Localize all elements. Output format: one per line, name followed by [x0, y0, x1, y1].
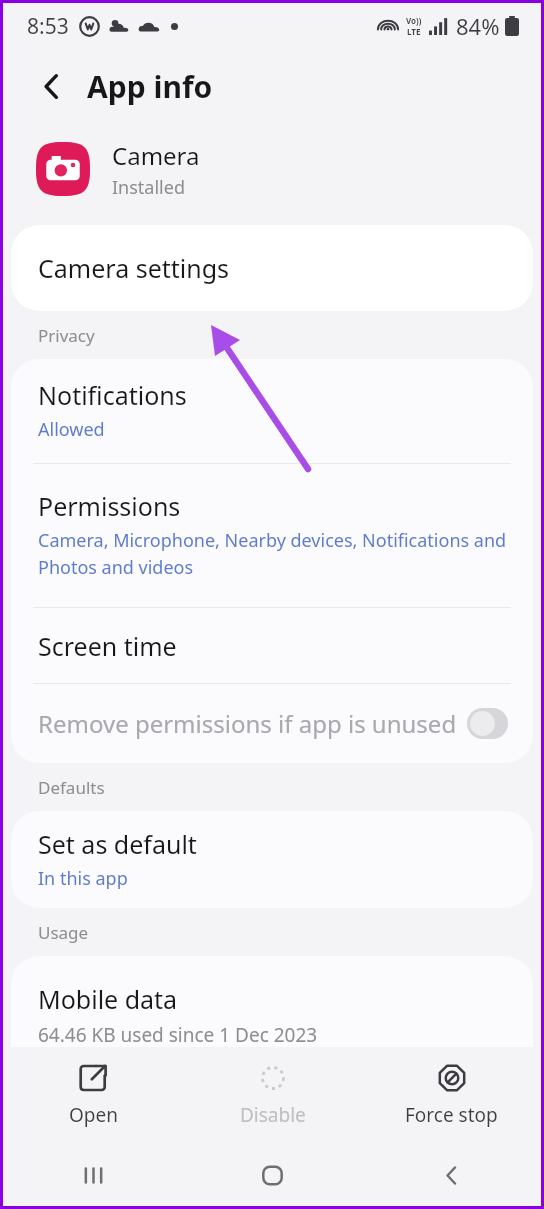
button[interactable]: Mobile data: [11, 956, 533, 1074]
button[interactable]: Disable: [183, 1047, 362, 1144]
button[interactable]: Back: [362, 1144, 541, 1206]
staticText: Camera settings: [38, 251, 230, 285]
staticText: Camera, Microphone, Nearby devices, Noti…: [38, 528, 507, 553]
staticText: Usage: [38, 921, 89, 944]
button[interactable]: Permissions: [11, 464, 533, 607]
button[interactable]: Set as default: [11, 811, 533, 908]
button[interactable]: Screen time: [11, 608, 533, 683]
staticText: Privacy: [38, 324, 95, 347]
staticText: Vo)): [406, 15, 422, 26]
staticText: App info: [87, 66, 213, 107]
staticText: Defaults: [38, 776, 105, 799]
staticText: Remove permissions if app is unused: [38, 707, 457, 740]
staticText: Camera: [112, 139, 200, 172]
button[interactable]: Notifications: [11, 359, 533, 463]
button[interactable]: Force stop: [362, 1047, 541, 1144]
button[interactable]: Remove permissions if app is unused: [11, 684, 533, 763]
staticText: Screen time: [38, 629, 177, 663]
staticText: Set as default: [38, 827, 197, 861]
button[interactable]: Recent apps: [3, 1144, 183, 1206]
staticText: Mobile data: [38, 982, 178, 1016]
staticText: 64.46 KB used since 1 Dec 2023: [38, 1022, 318, 1048]
button[interactable]: Back: [27, 62, 75, 110]
staticText: 84%: [456, 11, 500, 41]
staticText: Force stop: [405, 1102, 498, 1128]
button[interactable]: Home: [183, 1144, 362, 1206]
staticText: Notifications: [38, 378, 187, 412]
staticText: Photos and videos: [38, 555, 194, 580]
staticText: Open: [69, 1102, 118, 1128]
staticText: Installed: [112, 175, 185, 200]
staticText: Disable: [240, 1102, 306, 1128]
button[interactable]: Open: [3, 1047, 183, 1144]
staticText: 8:53: [27, 12, 69, 41]
staticText: Permissions: [38, 489, 181, 523]
staticText: LTE: [407, 26, 421, 37]
staticText: Allowed: [38, 417, 105, 442]
button[interactable]: Camera settings: [11, 225, 533, 311]
staticText: In this app: [38, 866, 128, 891]
